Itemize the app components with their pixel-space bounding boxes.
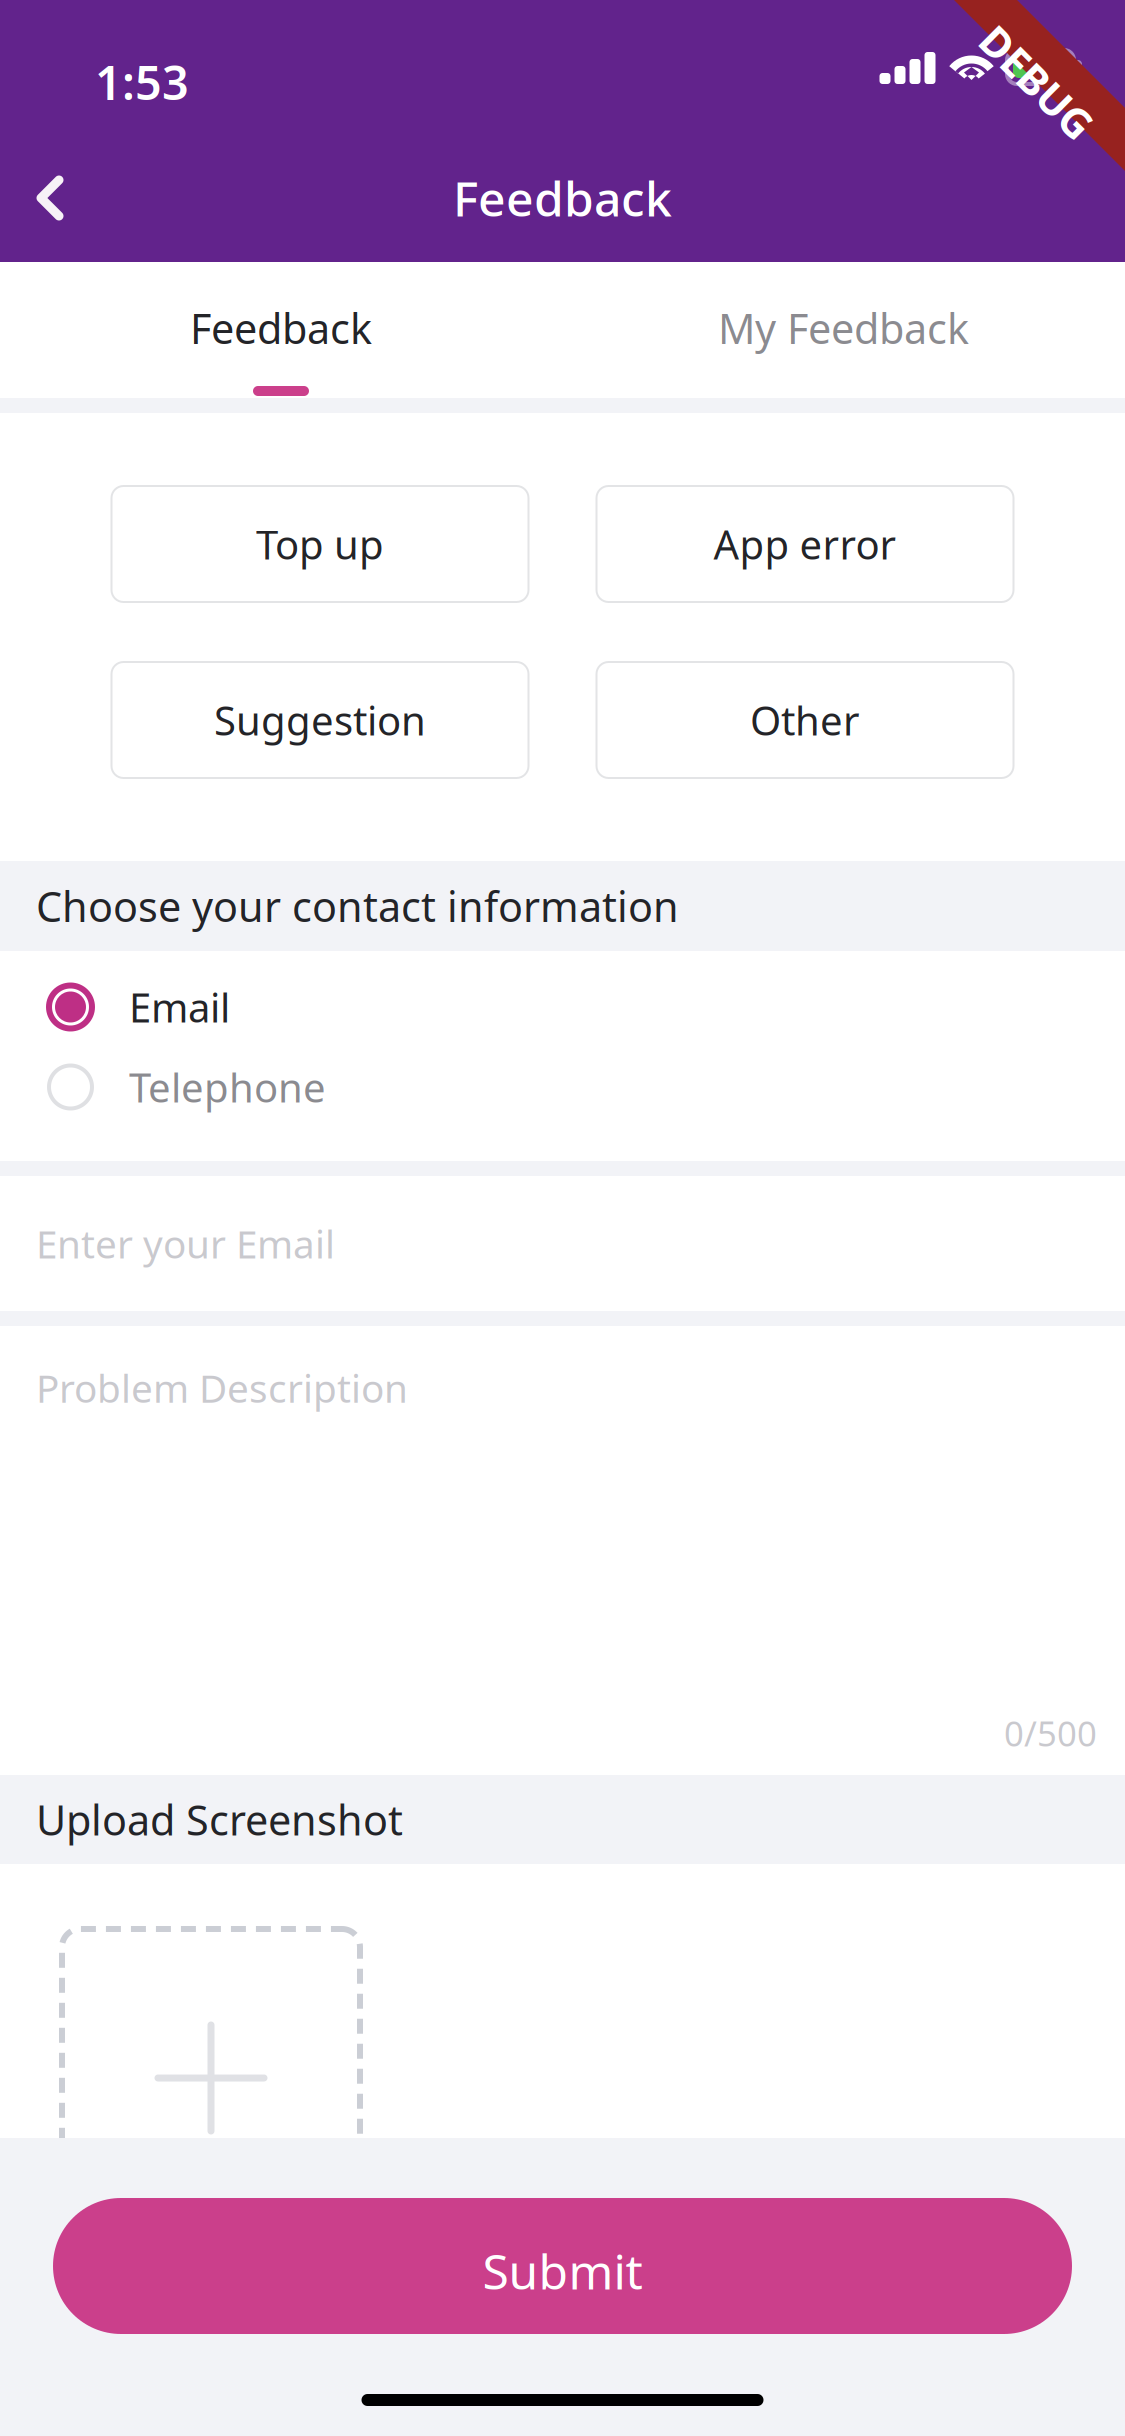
staticText: Feedback	[453, 166, 672, 230]
staticText: Upload Screenshot	[36, 1792, 403, 1847]
button[interactable]: Submit	[53, 2198, 1072, 2334]
staticText: Feedback	[190, 301, 372, 355]
staticText: App error	[713, 517, 896, 570]
staticText: 1:53	[95, 51, 189, 113]
staticText: Other	[750, 693, 860, 746]
button[interactable]: Feedback	[0, 262, 562, 398]
staticText: Enter your Email	[36, 1218, 335, 1269]
button[interactable]: Suggestion	[111, 662, 528, 778]
staticText: Submit	[482, 2239, 642, 2303]
button[interactable]: Telephone	[0, 1047, 1125, 1127]
staticText: Choose your contact information	[36, 879, 679, 933]
button[interactable]: My Feedback	[562, 262, 1125, 398]
staticText: Problem Description	[36, 1362, 408, 1413]
button[interactable]: Other	[596, 662, 1013, 778]
button[interactable]: Upload screenshot	[62, 1929, 360, 2227]
staticText: Top up	[256, 517, 384, 570]
staticText: Telephone	[129, 1060, 326, 1113]
button[interactable]: App error	[596, 486, 1013, 602]
staticText: My Feedback	[718, 301, 969, 355]
button[interactable]: Email	[0, 967, 1125, 1047]
staticText: DEBUG	[966, 55, 1107, 109]
staticText: Suggestion	[214, 693, 426, 746]
button[interactable]: Back	[0, 148, 100, 248]
staticText: Email	[129, 980, 230, 1033]
staticText: 0/500	[1004, 1710, 1097, 1756]
button[interactable]: Top up	[111, 486, 528, 602]
